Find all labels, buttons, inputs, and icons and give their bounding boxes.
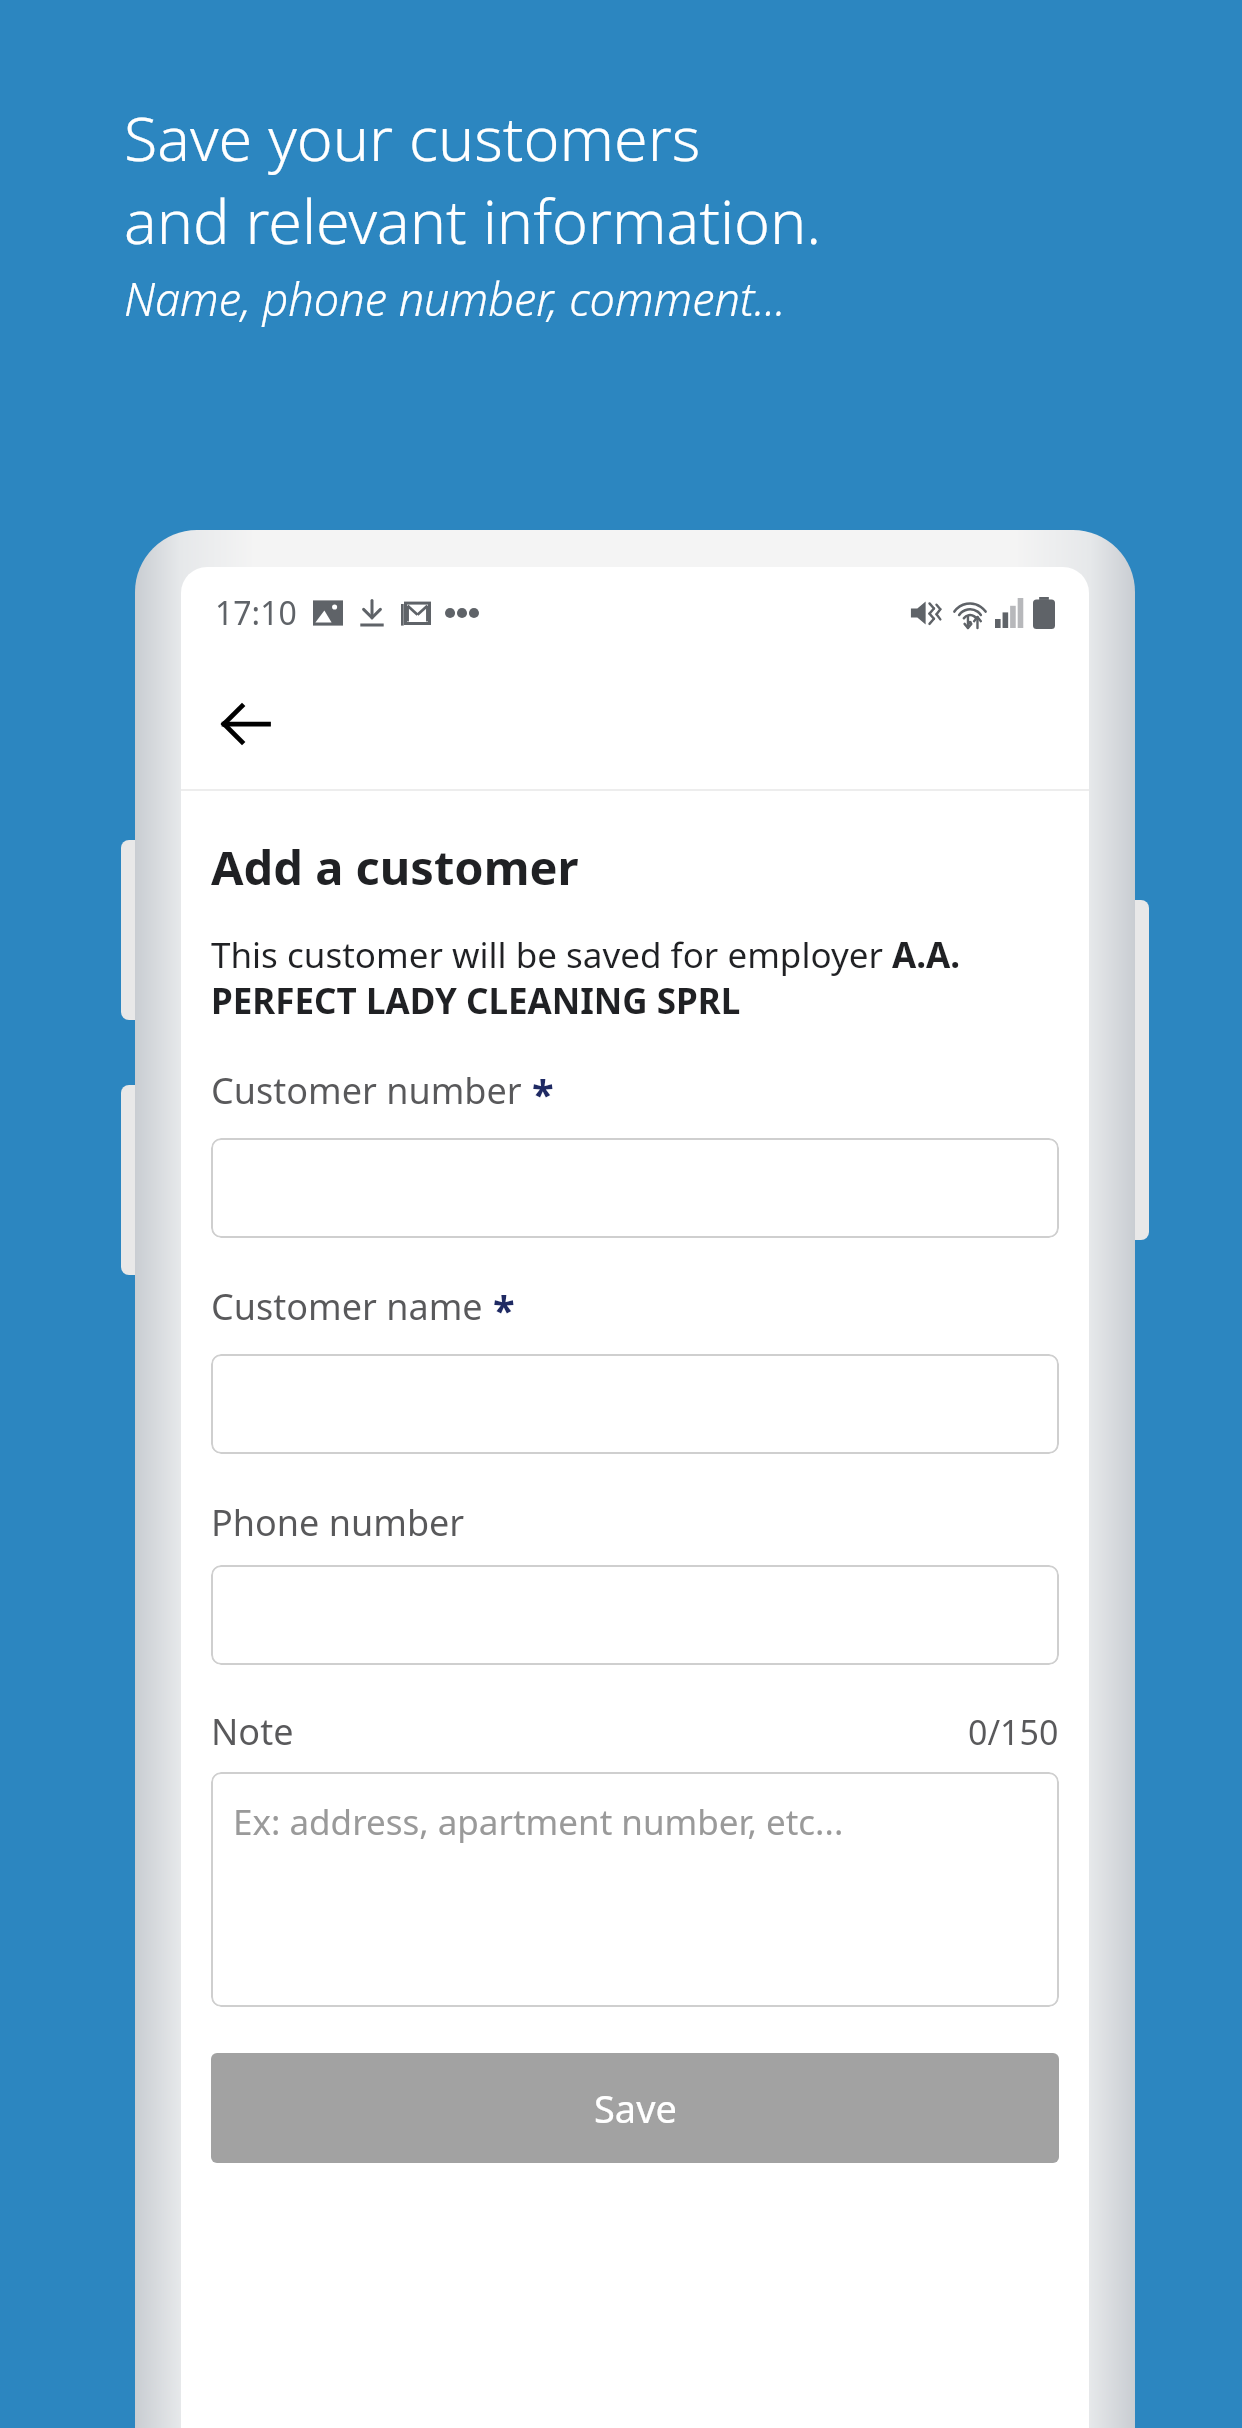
- staticText: *: [532, 1066, 554, 1120]
- button[interactable]: [211, 1138, 1059, 1238]
- staticText: 17:10: [215, 591, 297, 635]
- staticText: Add a customer: [211, 835, 579, 899]
- staticText: 0/150: [968, 1709, 1059, 1755]
- staticText: This customer will be saved for employer…: [211, 931, 1059, 1024]
- staticText: Customer name: [211, 1282, 483, 1331]
- staticText: Ex: address, apartment number, etc...: [233, 1798, 844, 1846]
- staticText: Save your customers: [124, 96, 701, 179]
- staticText: Phone number: [211, 1498, 465, 1547]
- button[interactable]: Save: [211, 2053, 1059, 2163]
- staticText: Save: [594, 2082, 677, 2134]
- button[interactable]: Ex: address, apartment number, etc...: [211, 1772, 1059, 2007]
- staticText: Note: [211, 1707, 294, 1756]
- staticText: Name, phone number, comment...: [124, 268, 786, 329]
- staticText: *: [493, 1282, 515, 1336]
- button[interactable]: Back: [203, 681, 289, 767]
- button[interactable]: [211, 1354, 1059, 1454]
- staticText: and relevant information.: [124, 179, 822, 262]
- button[interactable]: [211, 1565, 1059, 1665]
- staticText: Customer number: [211, 1066, 522, 1115]
